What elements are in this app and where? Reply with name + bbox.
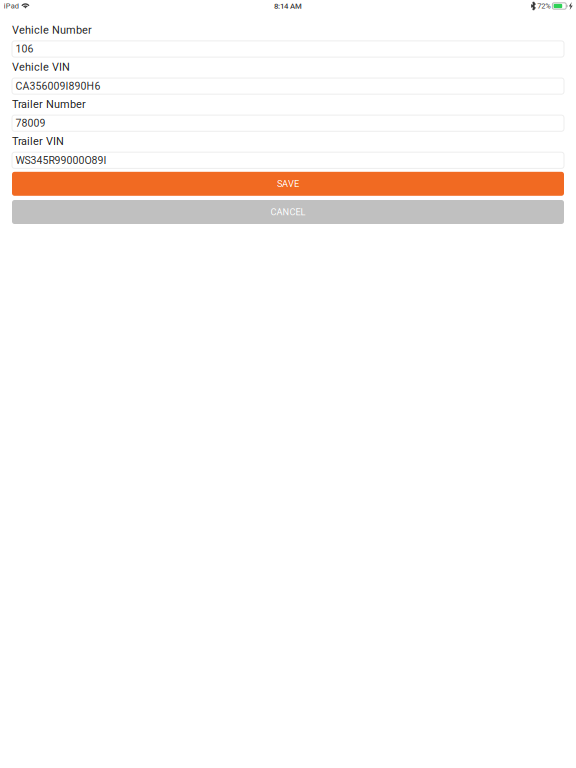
staticText: Vehicle VIN (12, 61, 70, 73)
staticText: WS345R99000O89I (16, 154, 107, 166)
staticText: Trailer Number (12, 98, 86, 110)
staticText: Trailer VIN (12, 135, 64, 148)
staticText: CANCEL (270, 207, 305, 217)
button[interactable]: WS345R99000O89I (12, 152, 564, 168)
staticText: Vehicle Number (12, 23, 92, 36)
staticText: 78009 (16, 117, 46, 129)
button[interactable]: 106 (12, 41, 564, 57)
button[interactable]: CA356009I890H6 (12, 78, 564, 94)
staticText: SAVE (277, 178, 299, 189)
staticText: 72% (537, 2, 550, 10)
staticText: CA356009I890H6 (16, 80, 101, 92)
staticText: 8:14 AM (274, 1, 302, 11)
staticText: iPad (4, 2, 19, 10)
staticText: 106 (16, 43, 34, 55)
button[interactable]: 78009 (12, 115, 564, 131)
button[interactable]: SAVE (12, 172, 564, 196)
button[interactable]: CANCEL (12, 200, 564, 224)
